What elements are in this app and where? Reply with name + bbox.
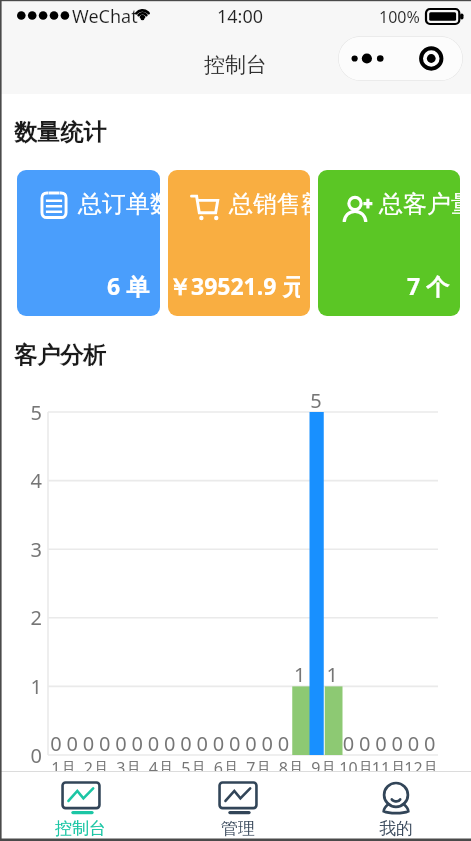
staticText: 总销售额	[229, 189, 310, 219]
staticText: 我的	[379, 818, 413, 839]
button[interactable]: 我的	[317, 772, 471, 841]
staticText: 管理	[221, 818, 255, 839]
staticText: 控制台	[204, 52, 267, 78]
staticText: ￥39521.9 元	[168, 270, 300, 301]
staticText: 客户分析	[14, 341, 106, 370]
staticText: 数量统计	[14, 118, 106, 147]
staticText: 7 个	[407, 270, 450, 301]
button[interactable]: 控制台	[2, 772, 159, 841]
button[interactable]: 总订单数	[17, 170, 160, 316]
staticText: 100%	[379, 6, 420, 28]
staticText: 总订单数	[78, 189, 160, 219]
staticText: 控制台	[55, 818, 106, 839]
button[interactable]: 总销售额	[168, 170, 310, 316]
staticText: WeChat	[72, 4, 138, 29]
staticText: 总客户量	[379, 189, 460, 219]
button[interactable]: Menu and close	[338, 36, 463, 81]
button[interactable]: 总客户量	[318, 170, 460, 316]
button[interactable]: 管理	[159, 772, 316, 841]
staticText: 6 单	[107, 270, 150, 301]
staticText: 14:00	[217, 4, 264, 29]
